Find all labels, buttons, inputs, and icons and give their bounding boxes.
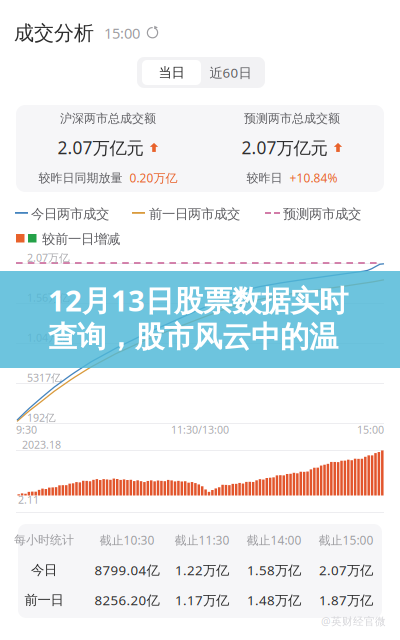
staticText: 192亿 bbox=[27, 410, 56, 425]
staticText: 12月13日股票数据实时 bbox=[48, 280, 348, 319]
staticText: 截止11:30 bbox=[174, 532, 229, 548]
staticText: 1.17万亿 bbox=[175, 591, 229, 609]
staticText: 今日 bbox=[31, 562, 57, 578]
staticText: 截止15:00 bbox=[318, 532, 373, 548]
staticText: 1.56万亿 bbox=[27, 290, 70, 305]
staticText: 15:00 bbox=[104, 23, 140, 43]
staticText: 2.07万亿元 bbox=[241, 136, 327, 159]
staticText: 1.58万亿 bbox=[247, 561, 301, 579]
staticText: 5317亿 bbox=[27, 370, 62, 385]
staticText: 前一日 bbox=[24, 592, 63, 608]
staticText: 沪深两市总成交额 bbox=[60, 111, 156, 126]
staticText: 1.22万亿 bbox=[175, 561, 229, 579]
button[interactable]: 近60日 bbox=[201, 60, 260, 85]
staticText: 较昨日同期放量 bbox=[38, 170, 122, 185]
staticText: 0.20万亿 bbox=[129, 170, 177, 186]
staticText: 每小时统计 bbox=[14, 533, 74, 547]
button[interactable]: 当日 bbox=[142, 60, 201, 85]
staticText: 8256.20亿 bbox=[94, 591, 159, 609]
staticText: +10.84% bbox=[289, 170, 337, 186]
staticText: 2.07万亿 bbox=[27, 250, 70, 265]
staticText: 9:30 bbox=[16, 422, 37, 437]
staticText: @英财经官微 bbox=[321, 614, 386, 628]
staticText: 今日两市成交 bbox=[31, 206, 109, 222]
staticText: 预测两市总成交额 bbox=[244, 111, 340, 126]
staticText: 2.07万亿元 bbox=[57, 136, 143, 159]
staticText: 1.87万亿 bbox=[319, 591, 373, 609]
staticText: 当日 bbox=[158, 64, 184, 81]
staticText: 截止14:00 bbox=[246, 532, 301, 548]
staticText: 较昨日 bbox=[246, 170, 282, 185]
staticText: 2.11 bbox=[18, 492, 39, 507]
staticText: 1.48万亿 bbox=[247, 591, 301, 609]
staticText: 1.04万亿 bbox=[27, 330, 70, 345]
staticText: 近60日 bbox=[209, 64, 251, 81]
staticText: 预测两市成交 bbox=[283, 206, 361, 222]
staticText: 查询，股市风云中的温 bbox=[48, 319, 338, 355]
staticText: 截止10:30 bbox=[99, 532, 154, 548]
staticText: 15:00 bbox=[357, 422, 384, 437]
staticText: 前一日两市成交 bbox=[149, 206, 240, 222]
staticText: 2.07万亿 bbox=[319, 561, 373, 579]
staticText: 2023.18 bbox=[22, 437, 61, 452]
staticText: 较前一日增减 bbox=[42, 231, 120, 247]
staticText: 成交分析 bbox=[14, 21, 94, 45]
staticText: 8799.04亿 bbox=[94, 561, 159, 579]
button[interactable]: 刷新 bbox=[146, 25, 160, 40]
staticText: 11:30/13:00 bbox=[171, 422, 229, 437]
